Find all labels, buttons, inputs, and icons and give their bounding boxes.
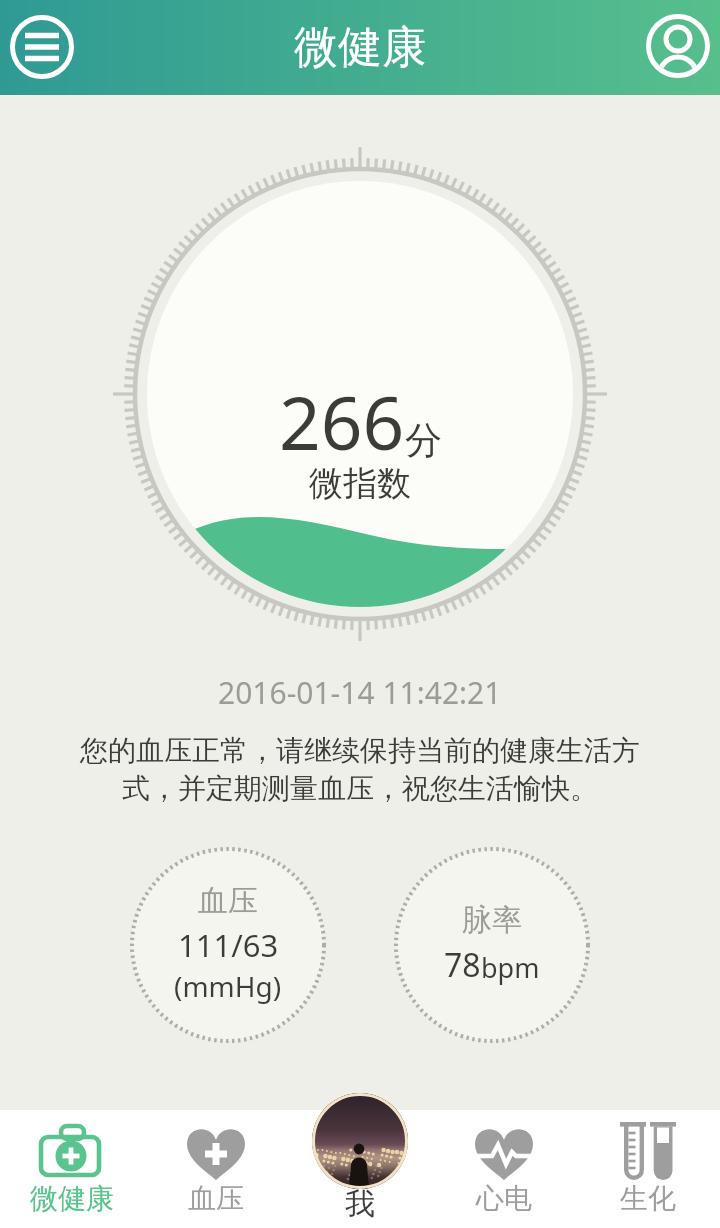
staticText: 您的血压正常，请继续保持当前的健康生活方 式，并定期测量血压，祝您生活愉快。 xyxy=(80,733,640,807)
staticText: 生化 xyxy=(620,1181,676,1216)
staticText: 266 xyxy=(279,372,405,471)
staticText: 微健康 xyxy=(294,20,426,75)
button[interactable]: 微健康 xyxy=(0,1112,144,1228)
button[interactable]: 血压 xyxy=(132,849,324,1041)
staticText: (mmHg) xyxy=(174,967,282,1005)
staticText: 微健康 xyxy=(30,1181,114,1216)
button[interactable]: 血压 xyxy=(144,1112,288,1228)
staticText: 111/63 xyxy=(178,924,279,966)
button[interactable]: 心电 xyxy=(432,1112,576,1228)
staticText: 微指数 xyxy=(309,462,411,505)
button[interactable] xyxy=(10,14,74,78)
staticText: 我 xyxy=(345,1185,375,1223)
button[interactable]: 生化 xyxy=(576,1112,720,1228)
staticText: 脉率 xyxy=(462,901,522,939)
button[interactable] xyxy=(646,14,710,78)
staticText: 分 xyxy=(405,417,442,464)
staticText: bpm xyxy=(481,949,540,986)
staticText: 2016-01-14 11:42:21 xyxy=(218,672,502,713)
staticText: 血压 xyxy=(188,1181,244,1216)
button[interactable]: 脉率 xyxy=(396,849,588,1041)
staticText: 78 xyxy=(444,943,481,987)
button[interactable]: 我 xyxy=(288,1093,432,1228)
staticText: 血压 xyxy=(198,882,258,920)
staticText: 心电 xyxy=(476,1181,532,1216)
